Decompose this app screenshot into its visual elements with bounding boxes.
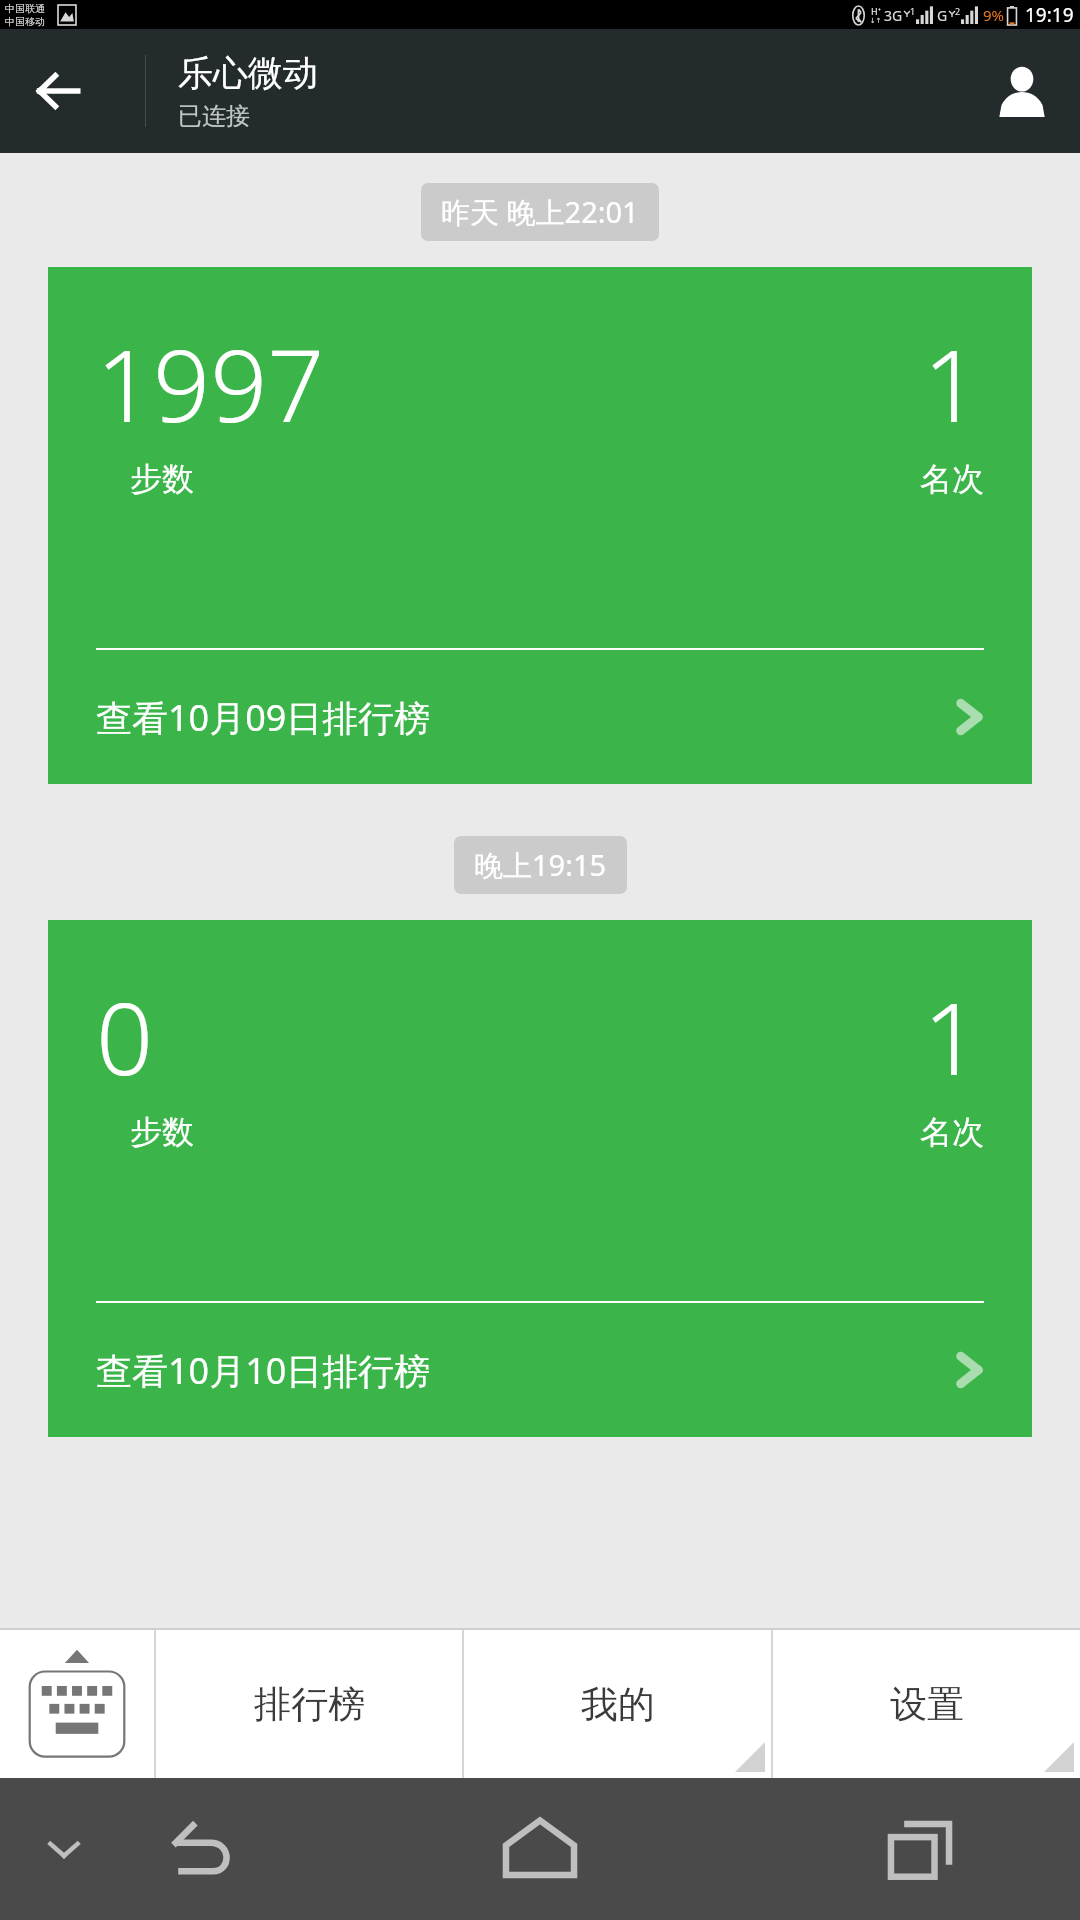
staticText: 已连接	[178, 101, 250, 131]
button[interactable]: Recents	[860, 1789, 980, 1909]
staticText: 9%	[983, 5, 1005, 25]
staticText: 昨天 晚上22:01	[441, 192, 639, 232]
staticText: 晚上19:15	[474, 845, 607, 885]
staticText: ↓↑	[870, 17, 882, 25]
staticText: 乐心微动	[178, 51, 318, 95]
staticText: 1	[923, 968, 981, 1104]
staticText: 中国移动	[5, 15, 45, 28]
staticText: 名次	[920, 1112, 984, 1152]
staticText: 中国联通	[5, 2, 45, 15]
button[interactable]: Home	[480, 1789, 600, 1909]
staticText: 2	[955, 5, 961, 17]
staticText: G	[937, 6, 948, 25]
staticText: 名次	[920, 459, 984, 499]
button[interactable]: 我的	[464, 1630, 771, 1778]
staticText: 1	[923, 315, 981, 451]
button[interactable]: 查看10月10日排行榜	[48, 1303, 1032, 1437]
staticText: 我的	[581, 1681, 655, 1728]
staticText: 查看10月09日排行榜	[96, 693, 431, 742]
button[interactable]: Hide	[24, 1809, 104, 1889]
staticText: 步数	[130, 459, 194, 499]
button[interactable]: 0	[48, 920, 1032, 1437]
staticText: 19:19	[1025, 2, 1074, 28]
button[interactable]: Back	[0, 33, 116, 149]
staticText: 设置	[890, 1681, 964, 1728]
staticText: 排行榜	[254, 1681, 365, 1728]
button[interactable]: Profile	[964, 33, 1080, 149]
staticText: 查看10月10日排行榜	[96, 1346, 431, 1395]
button[interactable]: Show keyboard	[0, 1630, 154, 1778]
staticText: 0	[96, 968, 154, 1104]
button[interactable]: 设置	[773, 1630, 1080, 1778]
button[interactable]: 查看10月09日排行榜	[48, 650, 1032, 784]
staticText: 3G	[884, 6, 903, 25]
staticText: 1	[910, 5, 916, 17]
staticText: 步数	[130, 1112, 194, 1152]
button[interactable]: Back	[148, 1794, 258, 1904]
button[interactable]: 排行榜	[156, 1630, 462, 1778]
button[interactable]: 1997	[48, 267, 1032, 784]
staticText: 1997	[96, 315, 325, 451]
staticText: H⁺	[871, 5, 881, 17]
